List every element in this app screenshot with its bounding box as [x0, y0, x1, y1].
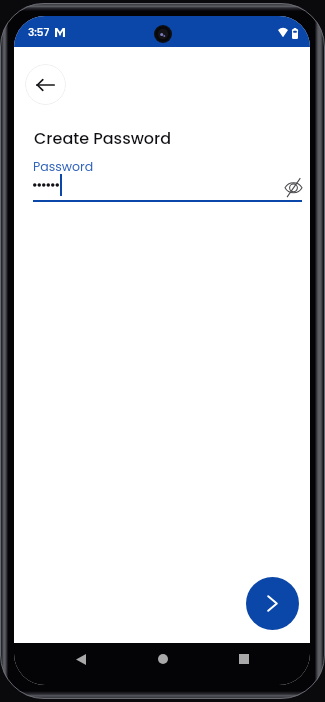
staticText: 3:57: [28, 25, 50, 40]
button[interactable]: Back: [65, 643, 97, 675]
button[interactable]: Show password: [279, 173, 307, 201]
button[interactable]: Recent apps: [228, 643, 260, 675]
staticText: Create Password: [34, 127, 172, 149]
button[interactable]: Back: [25, 64, 66, 105]
button[interactable]: Next: [246, 577, 299, 630]
button[interactable]: Home: [147, 643, 179, 675]
staticText: Password: [33, 158, 94, 175]
